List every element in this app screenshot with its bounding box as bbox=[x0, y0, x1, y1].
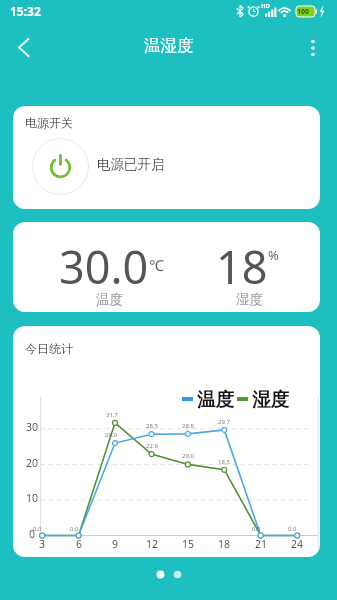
staticText: 湿度 bbox=[252, 388, 289, 411]
staticText: 31.7 bbox=[106, 411, 118, 419]
staticText: 电源已开启 bbox=[97, 156, 165, 173]
staticText: 21 bbox=[255, 537, 268, 551]
staticText: 24 bbox=[291, 537, 304, 551]
staticText: 26.0 bbox=[105, 431, 117, 439]
staticText: 0 bbox=[29, 527, 36, 541]
staticText: 18.5 bbox=[218, 458, 230, 466]
staticText: 18 bbox=[218, 537, 231, 551]
staticText: 温湿度 bbox=[144, 35, 194, 56]
staticText: 15 bbox=[182, 537, 195, 551]
staticText: 12 bbox=[146, 537, 159, 551]
staticText: 6 bbox=[76, 537, 83, 551]
staticText: 温度 bbox=[96, 291, 123, 308]
button[interactable] bbox=[32, 138, 89, 195]
staticText: 湿度 bbox=[236, 291, 263, 308]
staticText: 28.6 bbox=[182, 422, 194, 430]
button[interactable] bbox=[297, 25, 329, 65]
staticText: 20.0 bbox=[182, 452, 194, 460]
staticText: % bbox=[268, 246, 279, 264]
staticText: 15:32 bbox=[10, 3, 41, 19]
staticText: ℃ bbox=[149, 255, 164, 275]
staticText: 28.5 bbox=[146, 422, 158, 430]
button[interactable] bbox=[8, 29, 40, 61]
staticText: 0.0 bbox=[70, 525, 79, 533]
staticText: 30.0 bbox=[59, 236, 149, 297]
staticText: 0.0 bbox=[33, 525, 42, 533]
staticText: 10 bbox=[26, 491, 39, 505]
staticText: 电源开关 bbox=[25, 115, 73, 130]
staticText: 9 bbox=[112, 537, 119, 551]
staticText: 29.7 bbox=[218, 418, 230, 426]
staticText: 0.0 bbox=[252, 525, 261, 533]
staticText: HD bbox=[261, 2, 270, 10]
staticText: 今日统计 bbox=[25, 341, 73, 356]
staticText: 3 bbox=[39, 537, 46, 551]
staticText: 20 bbox=[26, 456, 39, 470]
staticText: 30 bbox=[26, 420, 39, 434]
staticText: 18 bbox=[216, 236, 268, 297]
staticText: 0.0 bbox=[288, 525, 297, 533]
staticText: 100 bbox=[297, 7, 310, 17]
staticText: 温度 bbox=[197, 388, 234, 411]
staticText: 22.9 bbox=[146, 442, 158, 450]
